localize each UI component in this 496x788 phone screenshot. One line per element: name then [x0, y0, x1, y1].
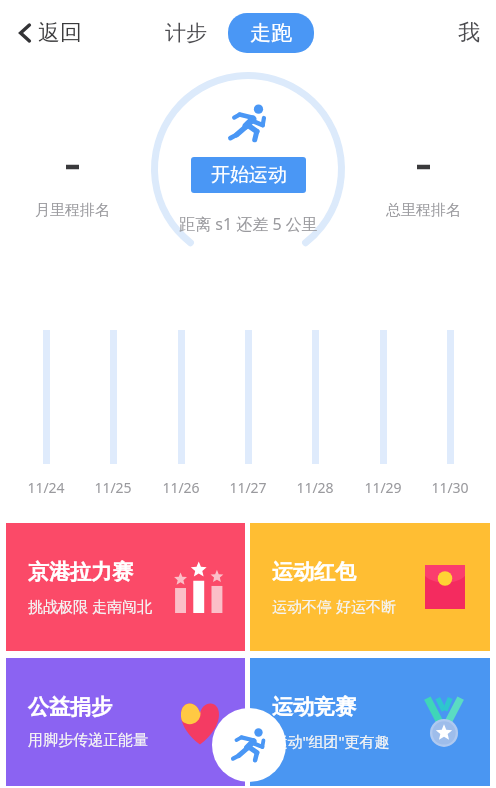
button[interactable]: 京港拉力赛 [6, 523, 245, 651]
staticText: 11/30 [431, 478, 469, 497]
button[interactable]: 计步 [155, 13, 217, 53]
staticText: 京港拉力赛 [28, 559, 133, 585]
staticText: 运动"组团"更有趣 [272, 731, 390, 751]
button[interactable]: 运动竞赛 [250, 658, 490, 786]
button[interactable]: 开始运动 [191, 157, 306, 193]
staticText: 返回 [38, 19, 82, 47]
button[interactable]: Start running [212, 708, 286, 782]
staticText: 11/25 [94, 478, 132, 497]
staticText: 11/26 [162, 478, 200, 497]
staticText: 11/27 [229, 478, 267, 497]
button[interactable]: 公益捐步 [6, 658, 245, 786]
staticText: 11/24 [27, 478, 65, 497]
staticText: 挑战极限 走南闯北 [28, 596, 152, 616]
staticText: 我 [458, 19, 480, 47]
staticText: 运动竞赛 [272, 694, 356, 720]
staticText: 总里程排名 [386, 201, 461, 220]
button[interactable]: 月里程排名 [10, 163, 135, 220]
staticText: 距离 s1 还差 5 公里 [179, 213, 318, 235]
button[interactable]: 运动红包 [250, 523, 490, 651]
button[interactable]: 总里程排名 [361, 163, 486, 220]
staticText: 运动红包 [272, 559, 356, 585]
staticText: 开始运动 [211, 163, 287, 187]
staticText: 走跑 [250, 20, 292, 46]
button[interactable]: 我 [444, 11, 496, 55]
staticText: 计步 [165, 20, 207, 46]
staticText: 11/29 [364, 478, 402, 497]
staticText: 11/28 [296, 478, 334, 497]
staticText: 运动不停 好运不断 [272, 596, 396, 616]
staticText: 用脚步传递正能量 [28, 731, 148, 750]
staticText: 公益捐步 [28, 694, 112, 720]
staticText: 月里程排名 [35, 201, 110, 220]
button[interactable]: 返回 [0, 11, 92, 55]
button[interactable]: 走跑 [228, 13, 314, 53]
